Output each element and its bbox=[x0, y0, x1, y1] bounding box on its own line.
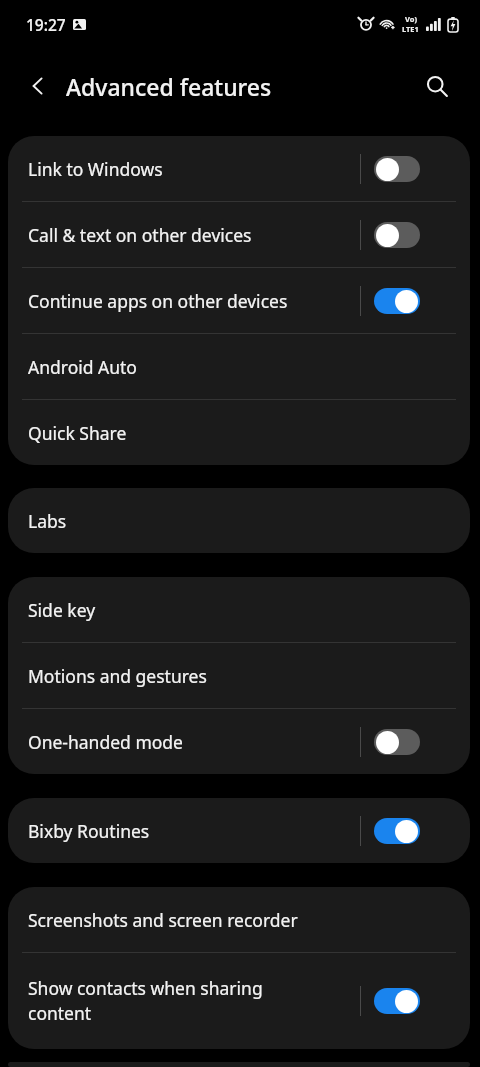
button[interactable]: Call & text on other devices bbox=[8, 202, 470, 267]
button[interactable]: Off bbox=[374, 156, 420, 182]
button[interactable]: Search bbox=[418, 67, 456, 105]
button[interactable]: Motions and gestures bbox=[8, 643, 470, 708]
button[interactable]: Off bbox=[374, 729, 420, 755]
button[interactable]: On bbox=[374, 818, 420, 844]
staticText: Show contacts when sharing content bbox=[28, 976, 360, 1026]
staticText: Link to Windows bbox=[28, 157, 360, 181]
staticText: 19:27 bbox=[26, 14, 66, 35]
button[interactable]: Continue apps on other devices bbox=[8, 268, 470, 333]
staticText: Quick Share bbox=[28, 421, 127, 445]
staticText: One-handed mode bbox=[28, 730, 360, 754]
staticText: Screenshots and screen recorder bbox=[28, 908, 298, 932]
button[interactable]: Show contacts when sharing content bbox=[8, 953, 470, 1049]
staticText: Vo) bbox=[405, 14, 417, 24]
button[interactable]: Off bbox=[374, 222, 420, 248]
staticText: Labs bbox=[28, 509, 67, 533]
staticText: Advanced features bbox=[66, 71, 272, 102]
staticText: LTE1 bbox=[402, 24, 419, 34]
staticText: Motions and gestures bbox=[28, 664, 207, 688]
staticText: Side key bbox=[28, 598, 96, 622]
button[interactable]: On bbox=[374, 988, 420, 1014]
button[interactable]: Android Auto bbox=[8, 334, 470, 399]
button[interactable]: Screenshots and screen recorder bbox=[8, 887, 470, 952]
button[interactable]: Bixby Routines bbox=[8, 798, 470, 863]
staticText: Call & text on other devices bbox=[28, 223, 360, 247]
button[interactable]: Side key bbox=[8, 577, 470, 642]
button[interactable]: On bbox=[374, 288, 420, 314]
button[interactable]: Link to Windows bbox=[8, 136, 470, 201]
button[interactable]: Labs bbox=[8, 488, 470, 553]
staticText: Bixby Routines bbox=[28, 819, 360, 843]
staticText: Continue apps on other devices bbox=[28, 289, 360, 313]
button[interactable]: Back bbox=[20, 68, 56, 104]
button[interactable]: Quick Share bbox=[8, 400, 470, 465]
staticText: Android Auto bbox=[28, 355, 137, 379]
button[interactable]: One-handed mode bbox=[8, 709, 470, 774]
